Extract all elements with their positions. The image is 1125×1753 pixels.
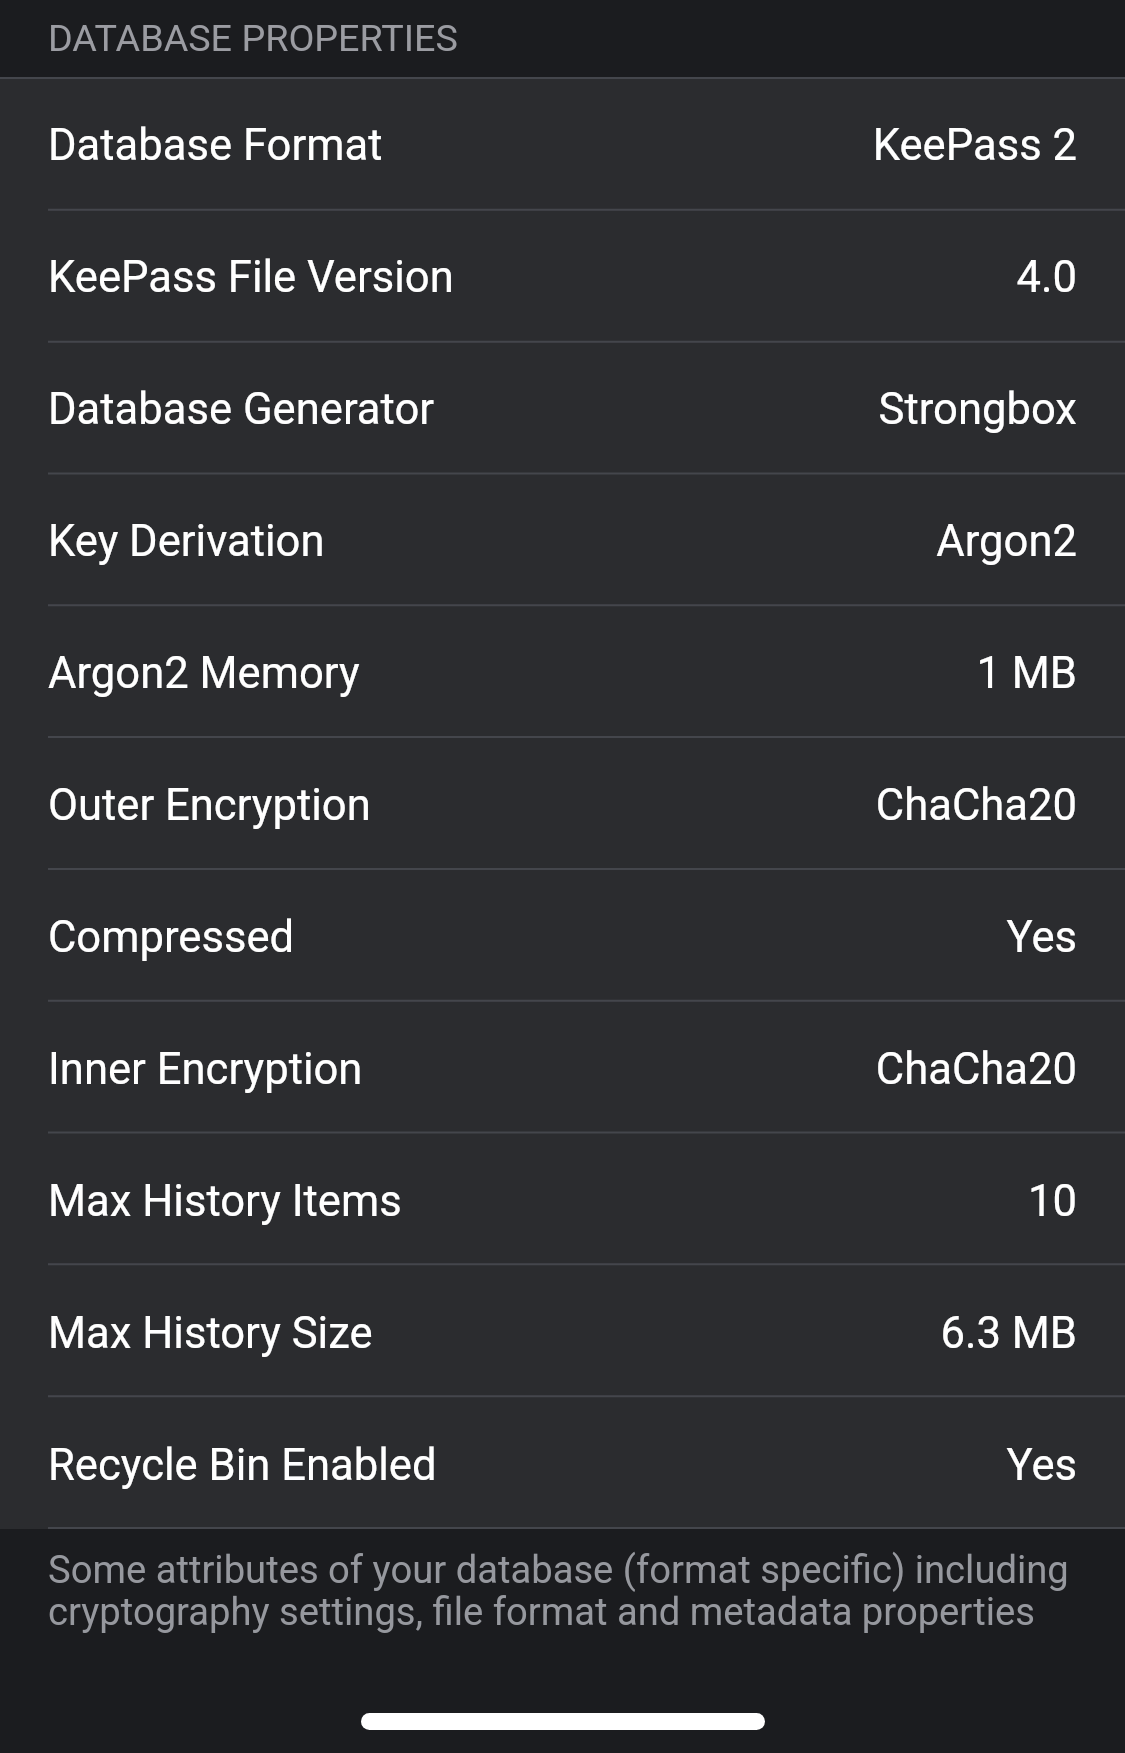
button[interactable]: Max History Size	[0, 1267, 1125, 1399]
button[interactable]: Inner Encryption	[0, 1003, 1125, 1135]
button[interactable]: Database Generator	[0, 343, 1125, 475]
staticText: Database Generator	[48, 384, 435, 435]
staticText: 6.3 MB	[940, 1308, 1077, 1359]
staticText: Max History Items	[48, 1176, 402, 1227]
staticText: 10	[1027, 1176, 1077, 1227]
button[interactable]: KeePass File Version	[0, 211, 1125, 343]
staticText: Recycle Bin Enabled	[48, 1440, 437, 1491]
staticText: Some attributes of your database (format…	[48, 1548, 1089, 1635]
staticText: ChaCha20	[875, 1044, 1077, 1095]
button[interactable]: Recycle Bin Enabled	[0, 1399, 1125, 1531]
staticText: Argon2 Memory	[48, 648, 360, 699]
staticText: Yes	[1006, 912, 1077, 963]
button[interactable]: Compressed	[0, 871, 1125, 1003]
staticText: Compressed	[48, 912, 295, 963]
button[interactable]: Max History Items	[0, 1135, 1125, 1267]
button[interactable]: Database Format	[0, 79, 1125, 211]
staticText: Yes	[1006, 1440, 1077, 1491]
button[interactable]: Key Derivation	[0, 475, 1125, 607]
staticText: 4.0	[1016, 252, 1077, 303]
staticText: 1 MB	[976, 648, 1077, 699]
staticText: Inner Encryption	[48, 1044, 363, 1095]
staticText: Argon2	[936, 516, 1077, 567]
staticText: Key Derivation	[48, 516, 325, 567]
button[interactable]: Outer Encryption	[0, 739, 1125, 871]
staticText: ChaCha20	[875, 780, 1077, 831]
staticText: Database Format	[48, 120, 383, 171]
staticText: Strongbox	[878, 384, 1077, 435]
staticText: Max History Size	[48, 1308, 373, 1359]
staticText: KeePass 2	[872, 120, 1077, 171]
staticText: Outer Encryption	[48, 780, 371, 831]
staticText: DATABASE PROPERTIES	[48, 16, 458, 60]
button[interactable]: Argon2 Memory	[0, 607, 1125, 739]
staticText: KeePass File Version	[48, 252, 454, 303]
